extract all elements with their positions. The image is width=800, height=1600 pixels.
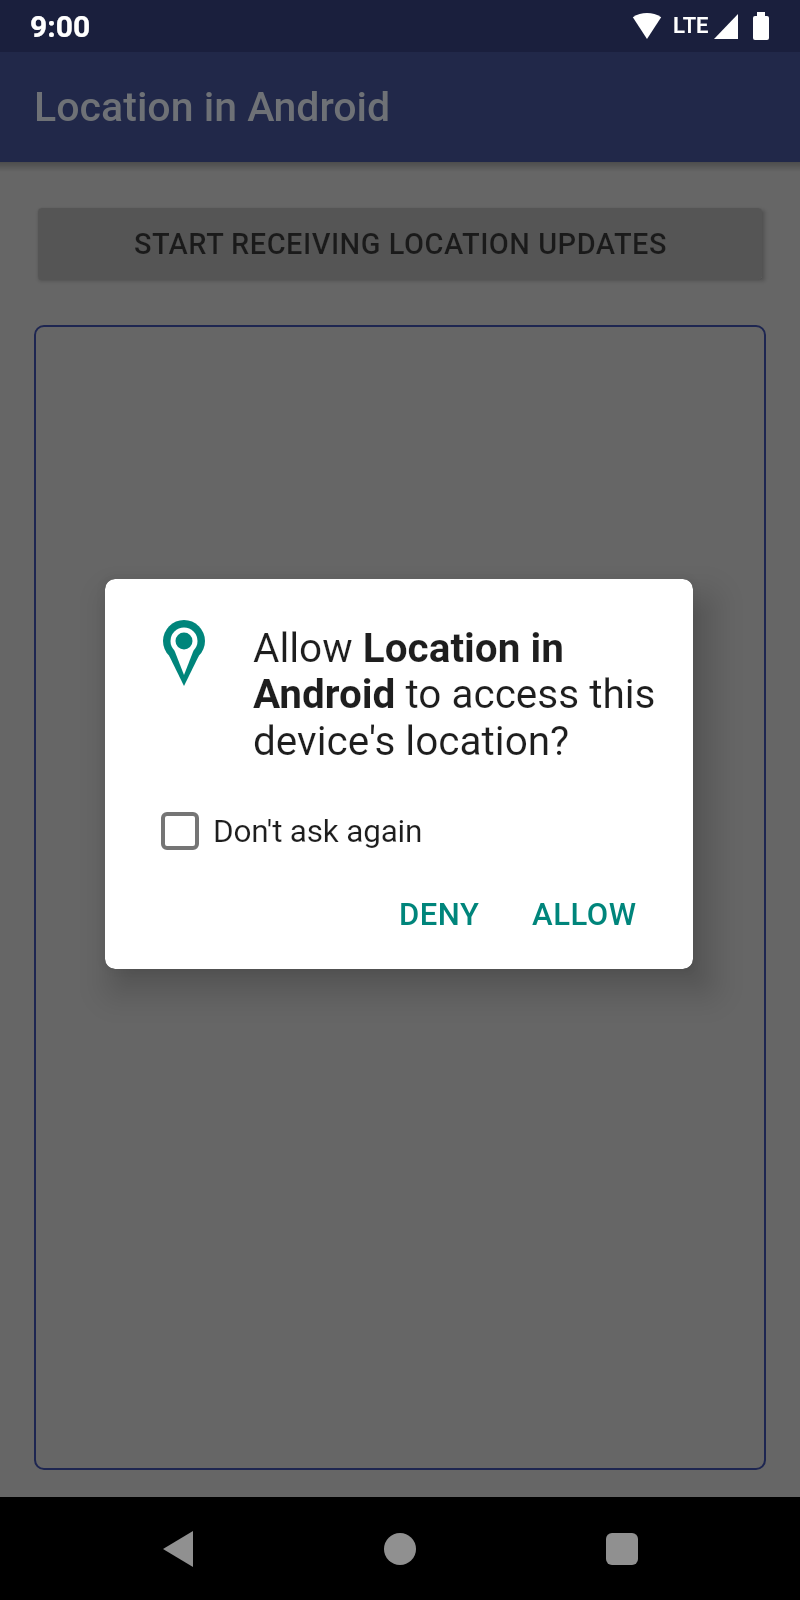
button[interactable]: DENY — [391, 888, 488, 940]
staticText: ALLOW — [532, 896, 637, 932]
staticText: DENY — [399, 896, 480, 932]
staticText: 9:00 — [30, 9, 91, 44]
staticText: Don't ask again — [213, 813, 423, 850]
button[interactable] — [368, 1517, 432, 1581]
button[interactable]: START RECEIVING LOCATION UPDATES — [38, 208, 762, 280]
button[interactable] — [146, 1517, 210, 1581]
staticText: Location in Android — [34, 83, 391, 131]
button[interactable]: ALLOW — [524, 888, 645, 940]
button[interactable] — [590, 1517, 654, 1581]
staticText: START RECEIVING LOCATION UPDATES — [134, 227, 667, 261]
staticText: Allow Location in Android to access this… — [253, 624, 665, 765]
staticText: LTE — [673, 13, 709, 39]
button[interactable]: Don't ask again — [161, 812, 423, 850]
